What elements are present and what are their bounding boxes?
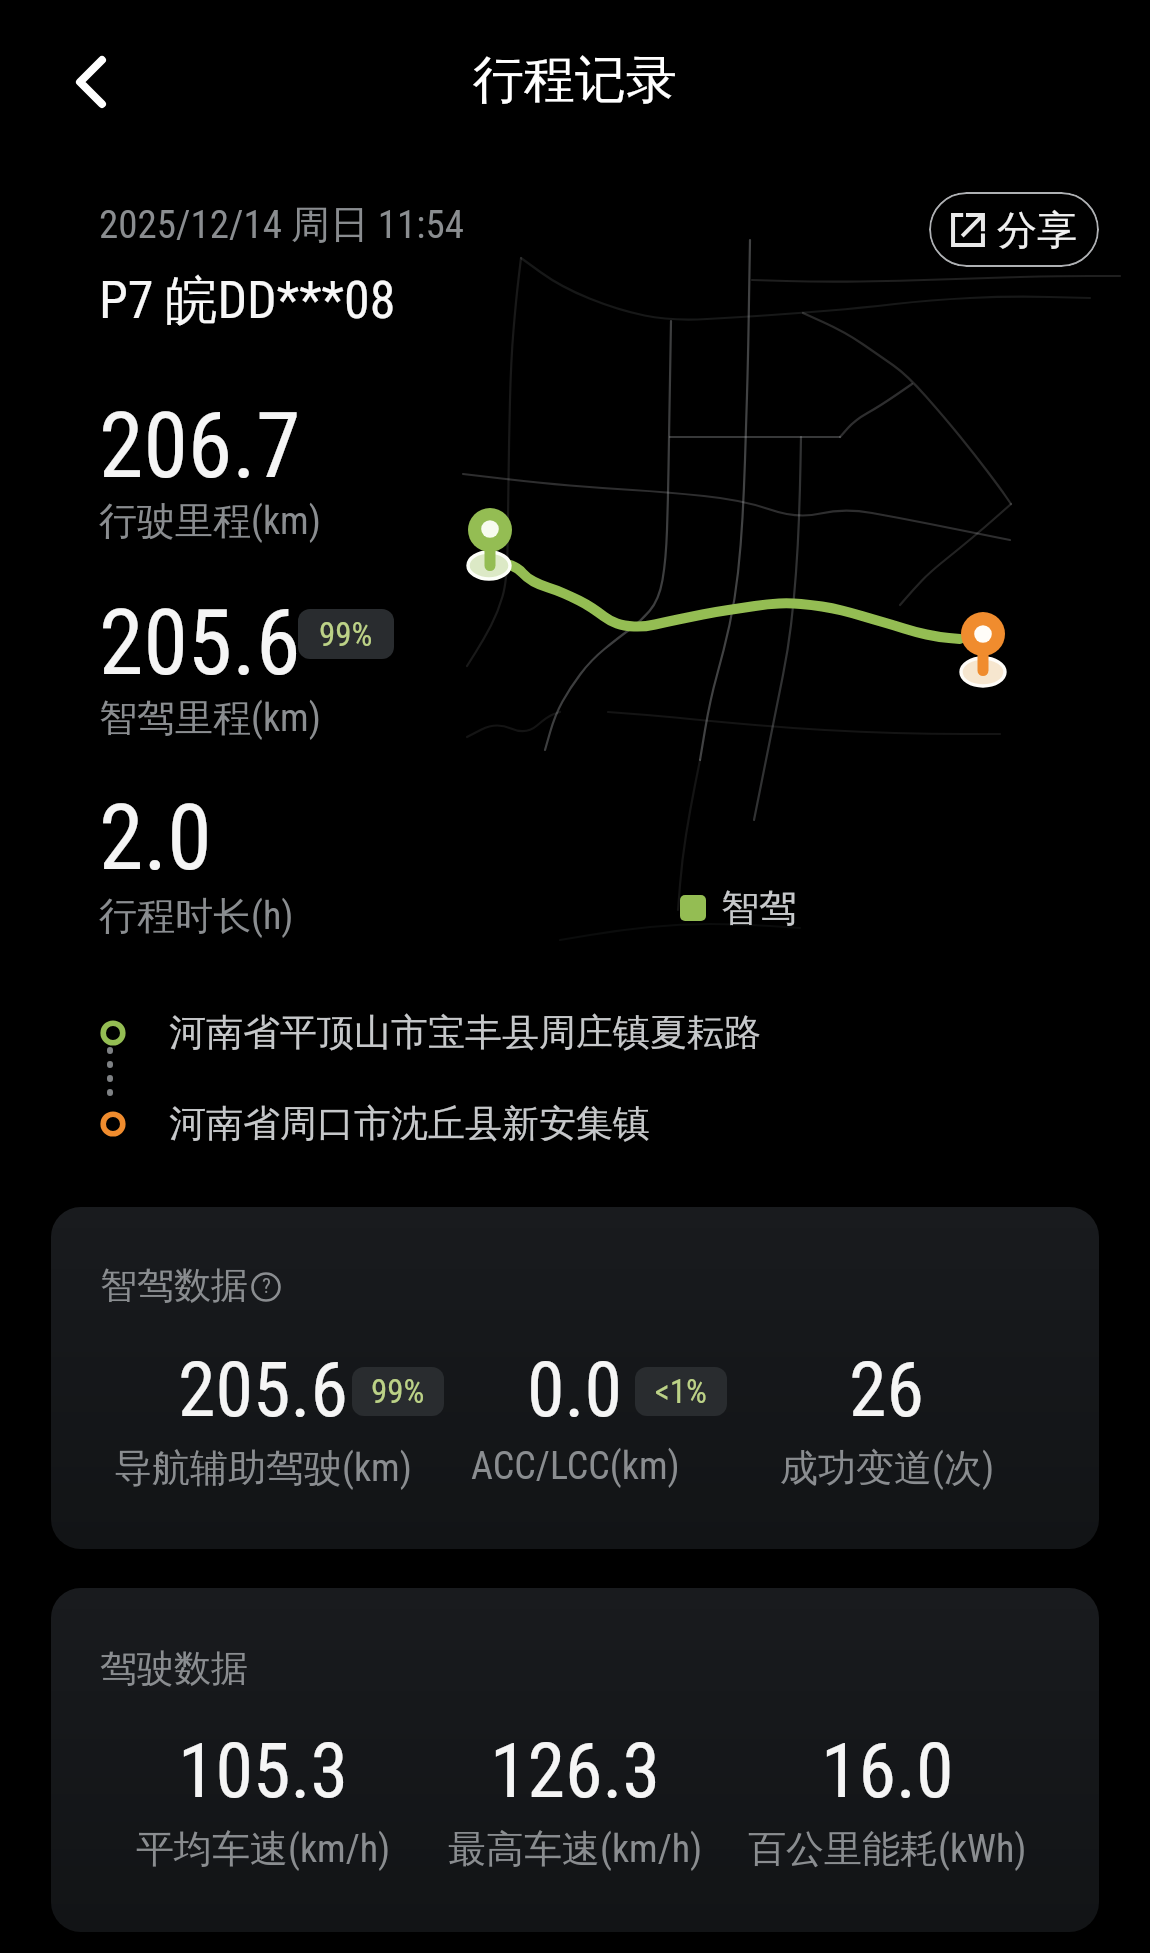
staticText: ? — [262, 1274, 271, 1299]
staticText: 智驾里程(km) — [99, 694, 321, 742]
staticText: 0.0 — [527, 1345, 623, 1434]
staticText: 105.3 — [178, 1726, 349, 1815]
button[interactable]: Info — [251, 1272, 281, 1302]
staticText: 行驶里程(km) — [99, 497, 321, 545]
button[interactable]: 河南省周口市沈丘县新安集镇 — [97, 1100, 650, 1147]
staticText: ACC/LCC(km) — [471, 1444, 680, 1489]
staticText: 河南省平顶山市宝丰县周庄镇夏耘路 — [169, 1009, 761, 1056]
staticText: 百公里能耗(kWh) — [748, 1825, 1027, 1873]
button[interactable]: Back — [49, 40, 133, 124]
staticText: <1% — [655, 1372, 707, 1411]
staticText: 2.0 — [99, 786, 212, 891]
staticText: 206.7 — [99, 394, 301, 499]
button[interactable]: 驾驶数据 — [51, 1588, 1099, 1932]
staticText: 河南省周口市沈丘县新安集镇 — [169, 1100, 650, 1147]
staticText: 2025/12/14 周日 11:54 — [99, 200, 464, 249]
staticText: 行程记录 — [0, 48, 1150, 112]
staticText: 99% — [319, 615, 373, 654]
staticText: 分享 — [997, 205, 1077, 255]
staticText: 成功变道(次) — [780, 1444, 995, 1492]
staticText: 16.0 — [821, 1726, 954, 1815]
staticText: 99% — [371, 1372, 425, 1411]
staticText: 驾驶数据 — [100, 1645, 248, 1692]
staticText: 205.6 — [178, 1345, 349, 1434]
staticText: 智驾数据 — [100, 1262, 248, 1309]
staticText: 导航辅助驾驶(km) — [114, 1444, 412, 1492]
button[interactable]: 分享 — [929, 192, 1099, 267]
staticText: 行程时长(h) — [99, 892, 294, 940]
staticText: 126.3 — [490, 1726, 661, 1815]
staticText: P7 皖DD***08 — [99, 268, 396, 334]
button[interactable]: 智驾数据 — [51, 1207, 1099, 1549]
staticText: 205.6 — [99, 591, 301, 696]
staticText: 最高车速(km/h) — [448, 1825, 703, 1873]
button[interactable]: 河南省平顶山市宝丰县周庄镇夏耘路 — [97, 1009, 761, 1056]
staticText: 平均车速(km/h) — [136, 1825, 391, 1873]
staticText: 26 — [849, 1345, 925, 1434]
staticText: 智驾 — [721, 884, 797, 932]
